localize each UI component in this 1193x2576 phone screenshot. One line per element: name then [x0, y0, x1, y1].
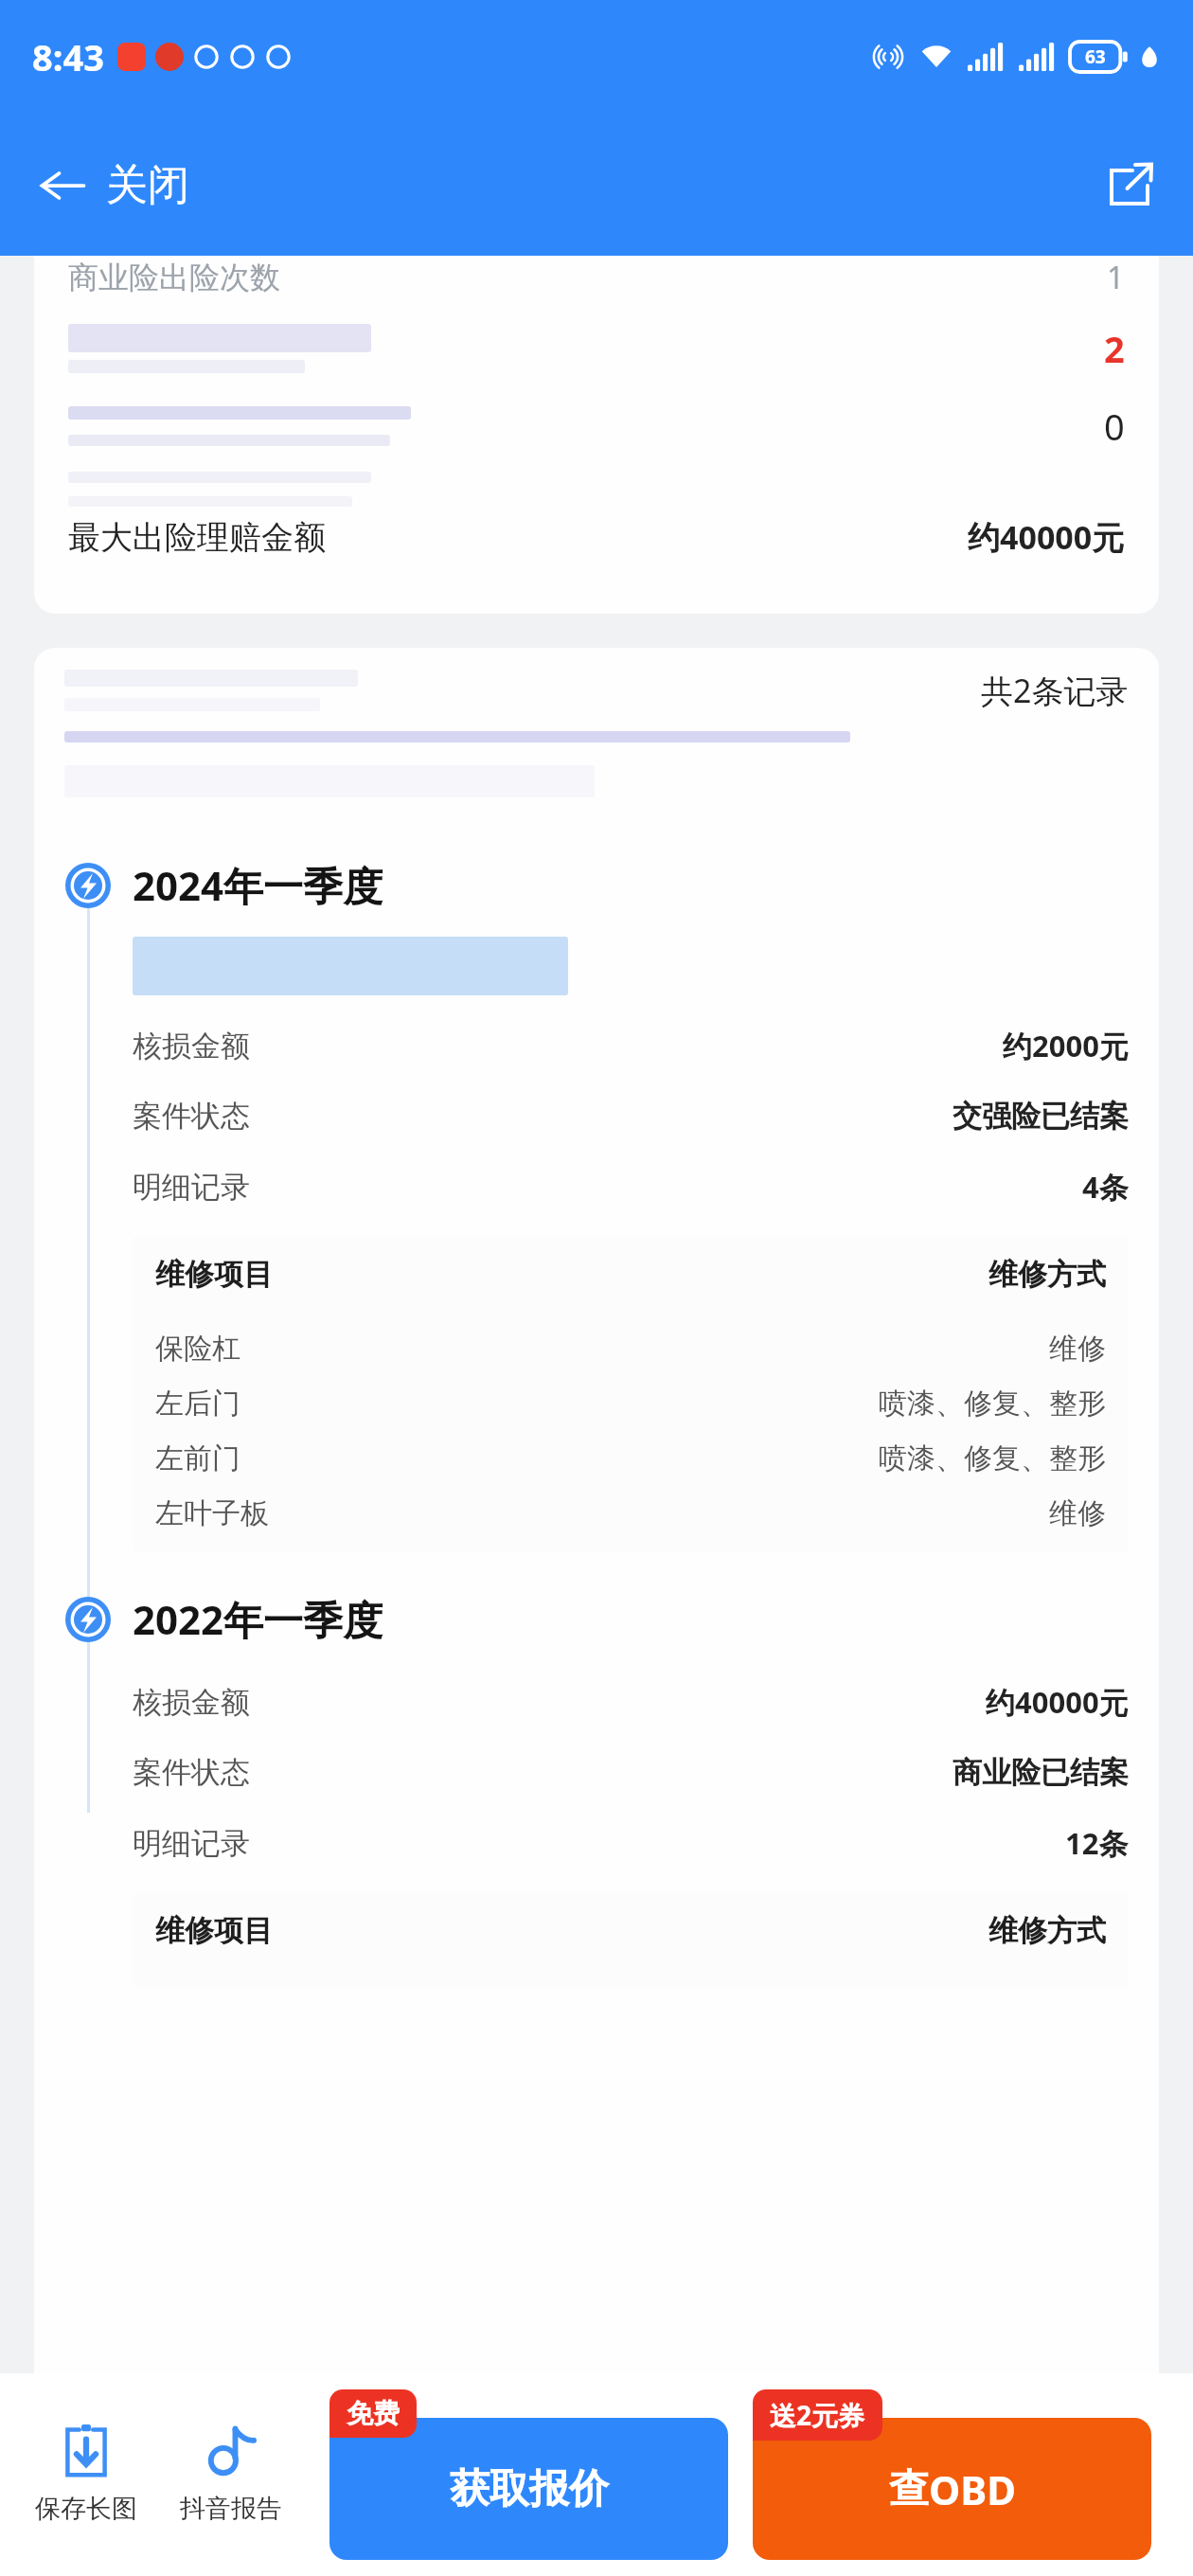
staticText: 获取报价: [450, 2464, 609, 2514]
staticText: 0: [1104, 402, 1125, 451]
staticText: 商业险已结案: [953, 1754, 1129, 1791]
staticText: 维修项目: [155, 1912, 273, 1949]
staticText: 约2000元: [1003, 1026, 1129, 1065]
staticText: 约40000元: [986, 1682, 1129, 1722]
staticText: 关闭: [106, 159, 189, 211]
staticText: 63: [1085, 45, 1106, 69]
staticText: 免费: [347, 2397, 400, 2430]
staticText: OBD: [929, 2462, 1016, 2516]
staticText: 8:43: [32, 32, 104, 81]
staticText: 喷漆、修复、整形: [879, 1440, 1106, 1476]
staticText: 左叶子板: [155, 1495, 269, 1531]
staticText: 保险杠: [155, 1331, 240, 1367]
staticText: 商业险出险次数: [68, 259, 280, 296]
staticText: 1: [1107, 257, 1125, 298]
staticText: 最大出险理赔金额: [68, 517, 326, 558]
staticText: 车300: [57, 492, 206, 567]
staticText: 2024年一季度: [133, 858, 383, 912]
staticText: 2022年一季度: [133, 1592, 383, 1646]
staticText: 核损金额: [133, 1028, 250, 1064]
staticText: 4条: [1082, 1167, 1129, 1207]
staticText: 保存长图: [35, 2493, 137, 2525]
staticText: 车300: [424, 966, 574, 1041]
staticText: 抖音报告: [180, 2493, 282, 2525]
button[interactable]: 抖音报告: [157, 2419, 305, 2531]
staticText: 左前门: [155, 1440, 240, 1476]
staticText: 维修: [1049, 1495, 1106, 1531]
staticText: 共2条记录: [981, 669, 1129, 712]
staticText: 维修方式: [988, 1912, 1106, 1949]
button[interactable]: 分享: [1095, 150, 1165, 220]
staticText: 维修方式: [988, 1256, 1106, 1293]
staticText: 核损金额: [133, 1684, 250, 1721]
staticText: 维修: [1049, 1331, 1106, 1367]
staticText: 喷漆、修复、整形: [879, 1386, 1106, 1422]
staticText: 案件状态: [133, 1754, 250, 1791]
staticText: 交强险已结案: [953, 1098, 1129, 1135]
staticText: 送2元券: [770, 2397, 865, 2433]
button[interactable]: 查: [753, 2418, 1151, 2560]
staticText: 案件状态: [133, 1098, 250, 1135]
staticText: 12条: [1065, 1823, 1129, 1863]
button[interactable]: 保存长图: [15, 2419, 157, 2531]
button[interactable]: 关闭: [28, 148, 199, 223]
staticText: 车300: [312, 729, 462, 804]
staticText: 约40000元: [968, 515, 1125, 559]
staticText: 维修项目: [155, 1256, 273, 1293]
staticText: 左后门: [155, 1386, 240, 1422]
staticText: 车300: [57, 966, 206, 1041]
staticText: 明细记录: [133, 1169, 250, 1206]
staticText: 车300: [312, 256, 462, 331]
staticText: 查: [889, 2464, 929, 2514]
staticText: 车300: [57, 1913, 206, 1988]
staticText: 车300: [57, 1440, 206, 1514]
staticText: 2: [1104, 324, 1125, 373]
staticText: 明细记录: [133, 1825, 250, 1862]
staticText: 车300: [680, 729, 829, 804]
button[interactable]: 获取报价: [329, 2418, 728, 2560]
